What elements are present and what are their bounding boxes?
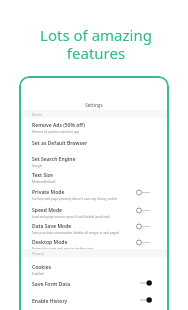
button[interactable]: Text Size [19, 172, 169, 184]
staticText: Medium(default) [32, 180, 56, 184]
button[interactable]: Cookies [19, 264, 169, 276]
staticText: Browse the same web page in desktop view [32, 247, 94, 251]
button[interactable]: Switch off [136, 237, 152, 248]
button[interactable]: Set as Default Browser [19, 140, 169, 148]
staticText: Privacy [32, 251, 44, 256]
staticText: Save Form Data [32, 281, 71, 288]
button[interactable]: Private Mode [19, 189, 169, 201]
button[interactable]: Data Save Mode [19, 223, 169, 235]
staticText: Settings [19, 102, 169, 108]
button[interactable]: Switch on [136, 296, 152, 304]
staticText: Basics [32, 112, 43, 117]
staticText: Set as Default Browser [32, 140, 88, 147]
button[interactable]: Remove Ads (50% off) [19, 122, 169, 134]
button[interactable]: Desktop Mode [19, 239, 169, 251]
staticText: Lots of amazing features [2, 25, 188, 64]
staticText: Enable History [32, 298, 68, 305]
staticText: Desktop Mode [32, 239, 68, 246]
button[interactable]: Switch off [136, 205, 152, 216]
staticText: Private Mode [32, 189, 65, 196]
staticText: Text Size [32, 172, 53, 179]
staticText: Save your data consumption (disable all … [32, 231, 120, 235]
staticText: Remove Ads (50% off) [32, 122, 85, 129]
staticText: Speed Mode [32, 207, 62, 214]
button[interactable]: Set Search Engine [19, 156, 169, 168]
staticText: Data Save Mode [32, 223, 72, 230]
staticText: Set Search Engine [32, 156, 76, 163]
button[interactable]: Switch on [136, 279, 152, 287]
staticText: Surf any web page privately (doesn't sav… [32, 197, 118, 201]
staticText: Google [32, 164, 43, 168]
button[interactable]: Enable History [19, 298, 169, 306]
button[interactable]: Switch off [136, 221, 152, 232]
staticText: Remove all sponsor ads from app [32, 130, 80, 134]
button[interactable]: Switch off [136, 187, 152, 198]
button[interactable]: Save Form Data [19, 281, 169, 289]
staticText: Enabled [32, 272, 44, 276]
staticText: Load web page in more speed (it will dis… [32, 215, 110, 219]
button[interactable]: Speed Mode [19, 207, 169, 219]
staticText: Cookies [32, 264, 52, 271]
